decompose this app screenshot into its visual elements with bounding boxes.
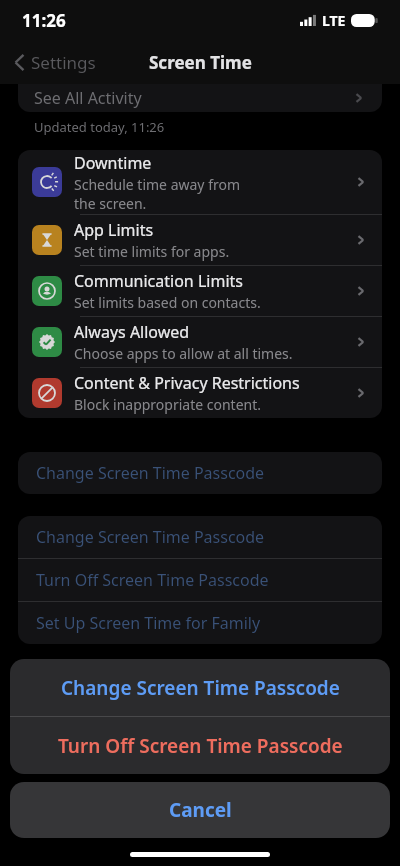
staticText: Schedule time away from the screen. xyxy=(74,175,241,213)
staticText: Turn Off Screen Time Passcode xyxy=(58,733,343,759)
button[interactable]: Downtime xyxy=(18,150,382,214)
staticText: Updated today, 11:26 xyxy=(34,118,165,136)
button[interactable]: Content & Privacy Restrictions xyxy=(18,368,382,418)
staticText: Settings xyxy=(31,51,96,74)
staticText: Screen Time xyxy=(149,51,252,74)
button[interactable]: See All Activity xyxy=(18,84,382,112)
button[interactable]: Turn Off Screen Time Passcode xyxy=(18,559,382,601)
button[interactable]: Change Screen Time Passcode xyxy=(10,659,390,716)
button[interactable]: Cancel xyxy=(10,782,390,838)
staticText: See All Activity xyxy=(34,87,142,109)
staticText: Block inappropriate content. xyxy=(74,395,262,414)
button[interactable]: App Limits xyxy=(18,215,382,265)
staticText: Always Allowed xyxy=(74,321,190,343)
staticText: Cancel xyxy=(169,797,232,823)
staticText: Change Screen Time Passcode xyxy=(36,526,265,548)
staticText: App Limits xyxy=(74,219,154,241)
staticText: Turn Off Screen Time Passcode xyxy=(36,569,269,591)
staticText: Change Screen Time Passcode xyxy=(36,462,265,484)
staticText: Set limits based on contacts. xyxy=(74,293,261,312)
staticText: Communication Limits xyxy=(74,270,243,292)
staticText: Content & Privacy Restrictions xyxy=(74,372,300,394)
button[interactable]: Turn Off Screen Time Passcode xyxy=(10,717,390,774)
staticText: LTE xyxy=(322,11,346,30)
staticText: Set Up Screen Time for Family xyxy=(36,612,261,634)
staticText: Choose apps to allow at all times. xyxy=(74,344,293,363)
button[interactable]: Change Screen Time Passcode xyxy=(18,516,382,558)
staticText: Change Screen Time Passcode xyxy=(61,675,340,701)
button[interactable]: Back to Settings xyxy=(10,45,100,80)
staticText: Set time limits for apps. xyxy=(74,242,230,261)
button[interactable]: Communication Limits xyxy=(18,266,382,316)
button[interactable]: Change Screen Time Passcode xyxy=(18,452,382,494)
button[interactable]: Always Allowed xyxy=(18,317,382,367)
staticText: Downtime xyxy=(74,152,152,174)
button[interactable]: Set Up Screen Time for Family xyxy=(18,602,382,644)
staticText: 11:26 xyxy=(22,9,66,32)
